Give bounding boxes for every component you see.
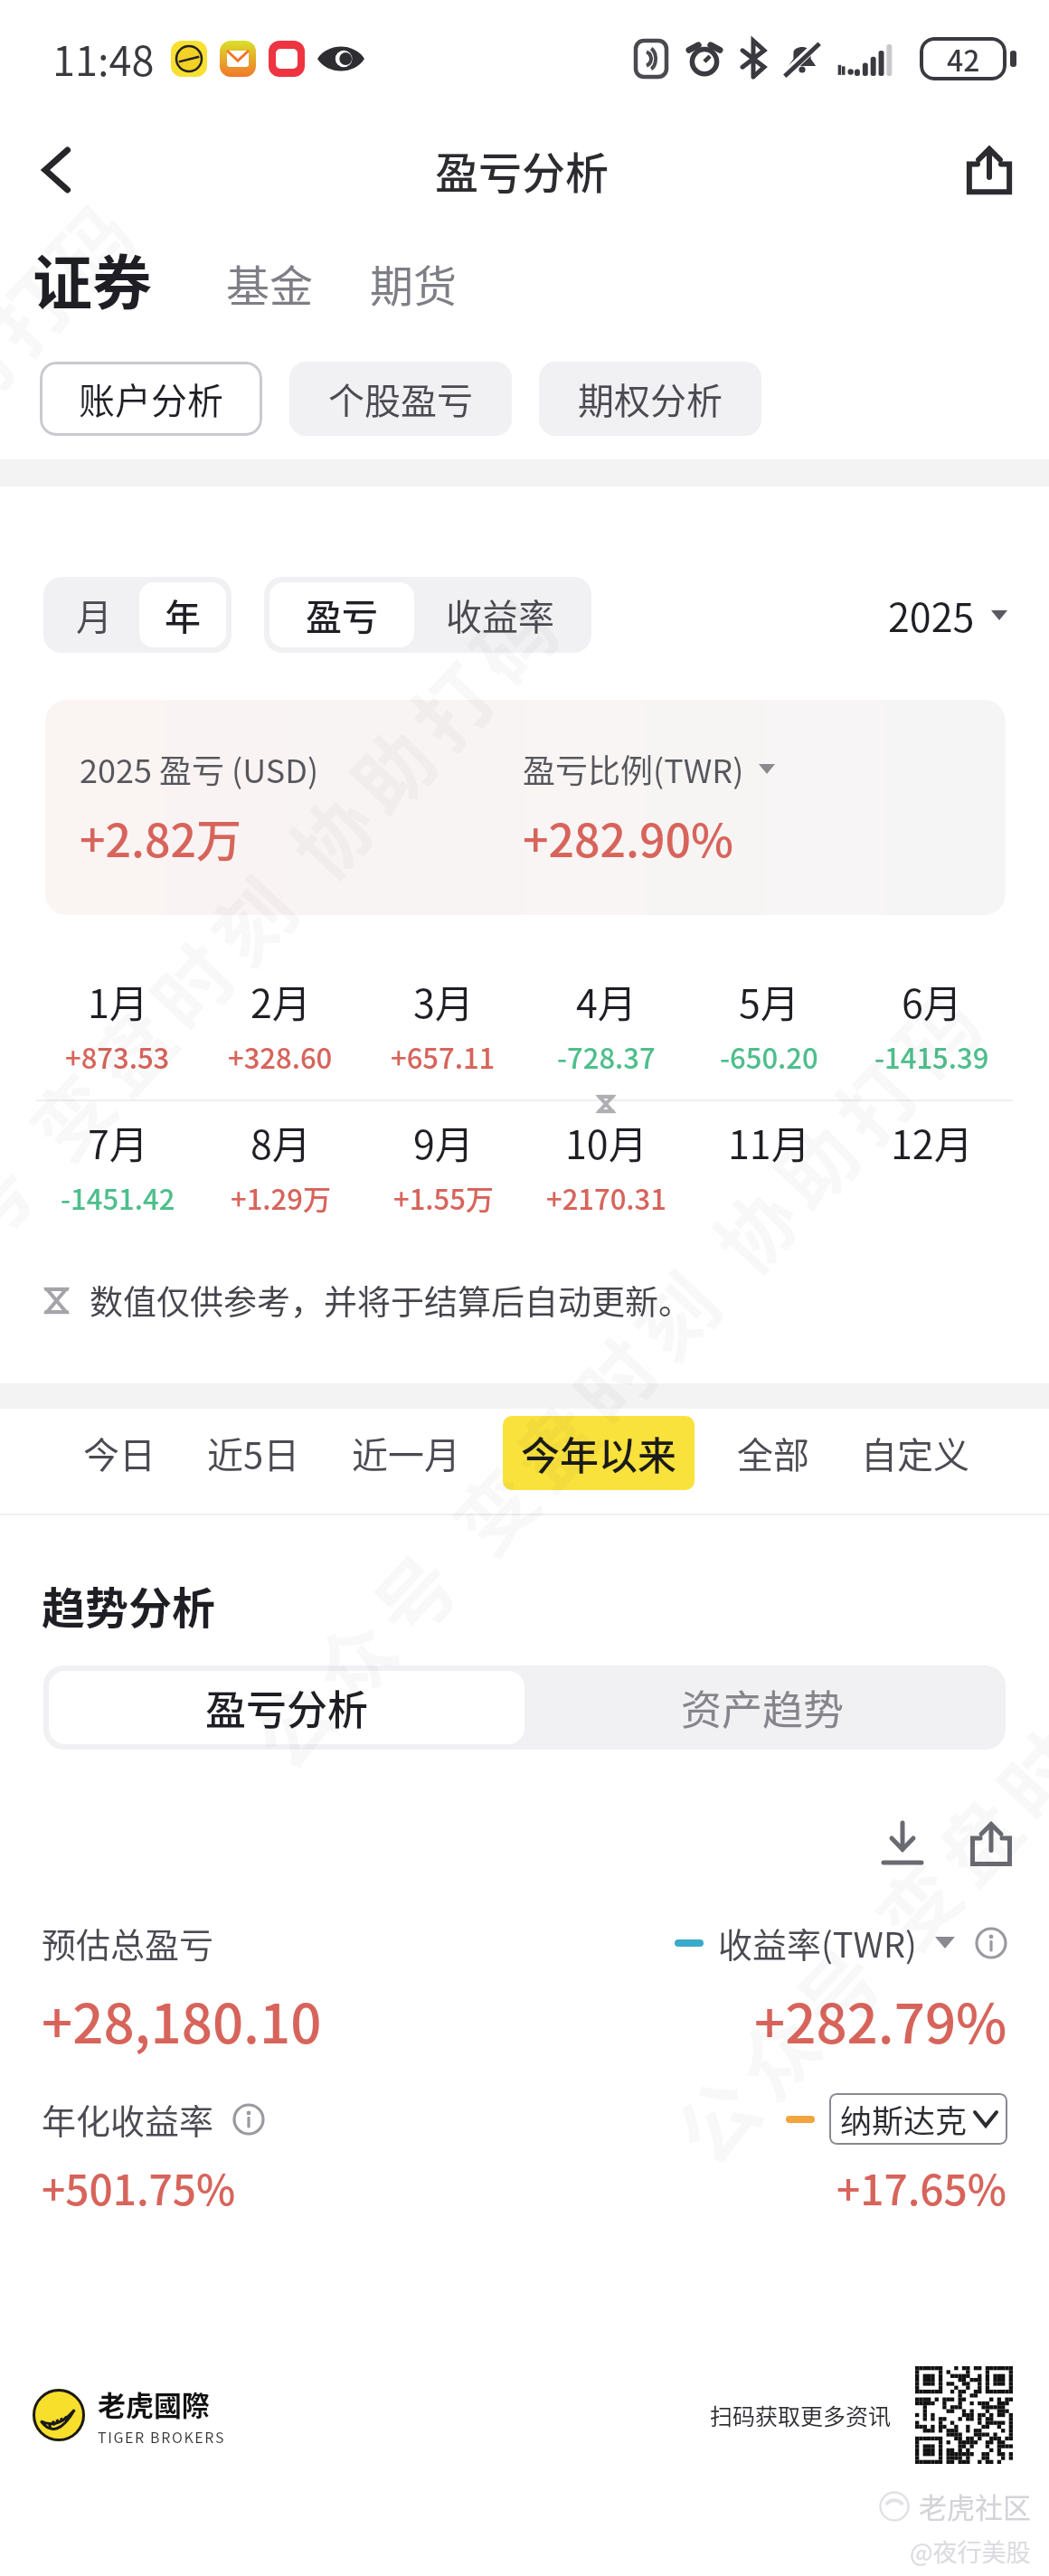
- button[interactable]: 1月: [36, 953, 199, 1077]
- staticText: +501.75%: [42, 2157, 236, 2218]
- staticText: 公众号 变盘时刻 协助打码: [0, 169, 164, 1001]
- button[interactable]: 期权分析: [539, 362, 761, 436]
- staticText: 期权分析: [578, 373, 723, 425]
- staticText: -728.37: [557, 1036, 656, 1077]
- staticText: 2月: [250, 973, 311, 1029]
- button[interactable]: 全部: [728, 1418, 818, 1488]
- staticText: 年化收益率: [42, 2094, 214, 2144]
- button[interactable]: 纳斯达克: [829, 2093, 1007, 2145]
- staticText: +1.29万: [231, 1177, 331, 1218]
- button[interactable]: 6月: [850, 953, 1013, 1077]
- button[interactable]: 11月: [687, 1094, 850, 1221]
- staticText: 老虎國際: [98, 2383, 210, 2424]
- staticText: 老虎社区: [919, 2486, 1031, 2526]
- staticText: 盈亏: [306, 589, 378, 641]
- staticText: 公众号 变盘时刻 协助打码: [647, 1353, 1049, 2185]
- staticText: 自定义: [861, 1427, 969, 1479]
- staticText: 趋势分析: [42, 1573, 216, 1637]
- staticText: 6月: [902, 973, 962, 1029]
- staticText: 数值仅供参考，并将于结算后自动更新。: [90, 1276, 692, 1325]
- staticText: -1451.42: [61, 1177, 175, 1218]
- button[interactable]: 今年以来: [503, 1416, 695, 1490]
- button[interactable]: 8月: [199, 1094, 362, 1218]
- staticText: 9月: [413, 1114, 474, 1170]
- button[interactable]: 收益率: [414, 582, 586, 647]
- staticText: 扫码获取更多资讯: [710, 2399, 892, 2431]
- staticText: 全部: [737, 1427, 809, 1479]
- staticText: 8月: [250, 1114, 311, 1170]
- staticText: +328.60: [228, 1036, 333, 1077]
- button[interactable]: 证券: [33, 235, 152, 322]
- staticText: 证券: [33, 235, 152, 322]
- staticText: 2025 盈亏 (USD): [80, 745, 319, 792]
- button[interactable]: 今日: [74, 1418, 165, 1488]
- staticText: 2025: [888, 587, 975, 643]
- staticText: 10月: [565, 1114, 647, 1170]
- staticText: 今日: [83, 1427, 156, 1479]
- staticText: 账户分析: [79, 373, 223, 425]
- button[interactable]: 7月: [36, 1094, 199, 1218]
- button[interactable]: 基金: [226, 251, 314, 322]
- staticText: +2170.31: [546, 1177, 666, 1218]
- button[interactable]: 期货: [370, 251, 458, 322]
- staticText: 11月: [728, 1114, 810, 1170]
- button[interactable]: Share chart: [957, 1809, 1025, 1878]
- button[interactable]: 9月: [362, 1094, 524, 1218]
- staticText: 资产趋势: [681, 1678, 845, 1737]
- staticText: 盈亏分析: [435, 138, 610, 202]
- button[interactable]: 2025: [888, 577, 1007, 653]
- staticText: 盈亏比例(TWR): [523, 745, 744, 792]
- button[interactable]: 盈亏分析: [49, 1671, 524, 1744]
- staticText: +657.11: [391, 1036, 496, 1077]
- button[interactable]: 盈亏: [269, 582, 414, 647]
- staticText: 个股盈亏: [328, 373, 473, 425]
- staticText: 月: [76, 589, 112, 641]
- button[interactable]: 年: [139, 582, 226, 647]
- staticText: +1.55万: [393, 1177, 494, 1218]
- button[interactable]: 3月: [362, 953, 524, 1077]
- staticText: 期货: [370, 251, 458, 315]
- staticText: 近一月: [352, 1427, 460, 1479]
- staticText: +28,180.10: [42, 1980, 322, 2059]
- button[interactable]: 月: [49, 582, 139, 647]
- staticText: 盈亏分析: [205, 1678, 369, 1737]
- button[interactable]: 2月: [199, 953, 362, 1077]
- staticText: 7月: [88, 1114, 148, 1170]
- staticText: 今年以来: [521, 1425, 676, 1481]
- staticText: +282.79%: [754, 1980, 1007, 2059]
- button[interactable]: 近一月: [343, 1418, 469, 1488]
- button[interactable]: Share: [946, 127, 1033, 213]
- staticText: 42: [947, 38, 980, 80]
- button[interactable]: 自定义: [852, 1418, 978, 1488]
- staticText: 基金: [226, 251, 314, 315]
- staticText: 公众号 变盘时刻 协助打码: [0, 564, 587, 1396]
- staticText: +2.82万: [80, 805, 241, 870]
- staticText: 纳斯达克: [840, 2096, 968, 2142]
- button[interactable]: 收益率(TWR): [675, 1918, 1007, 1967]
- button[interactable]: 账户分析: [40, 362, 262, 436]
- staticText: 1月: [88, 973, 148, 1029]
- button[interactable]: 近5日: [198, 1418, 309, 1488]
- button[interactable]: 4月: [524, 953, 687, 1077]
- staticText: -1415.39: [874, 1036, 989, 1077]
- staticText: @夜行美股: [910, 2534, 1031, 2569]
- staticText: 11:48: [52, 29, 155, 88]
- staticText: 收益率: [446, 589, 554, 641]
- staticText: 3月: [413, 973, 474, 1029]
- staticText: 公众号 变盘时刻 协助打码: [224, 958, 1011, 1791]
- button[interactable]: Download: [868, 1809, 937, 1878]
- button[interactable]: 12月: [850, 1094, 1013, 1221]
- button[interactable]: 10月: [524, 1094, 687, 1218]
- button[interactable]: 5月: [687, 953, 850, 1077]
- staticText: 预估总盈亏: [42, 1918, 214, 1967]
- button[interactable]: 个股盈亏: [289, 362, 512, 436]
- button[interactable]: 资产趋势: [524, 1671, 1000, 1744]
- staticText: +17.65%: [836, 2157, 1007, 2218]
- staticText: 12月: [891, 1114, 973, 1170]
- staticText: -650.20: [720, 1036, 818, 1077]
- staticText: 4月: [576, 973, 637, 1029]
- button[interactable]: 盈亏比例(TWR): [523, 745, 775, 792]
- button[interactable]: Back: [13, 127, 99, 213]
- staticText: +873.53: [65, 1036, 170, 1077]
- staticText: 5月: [739, 973, 799, 1029]
